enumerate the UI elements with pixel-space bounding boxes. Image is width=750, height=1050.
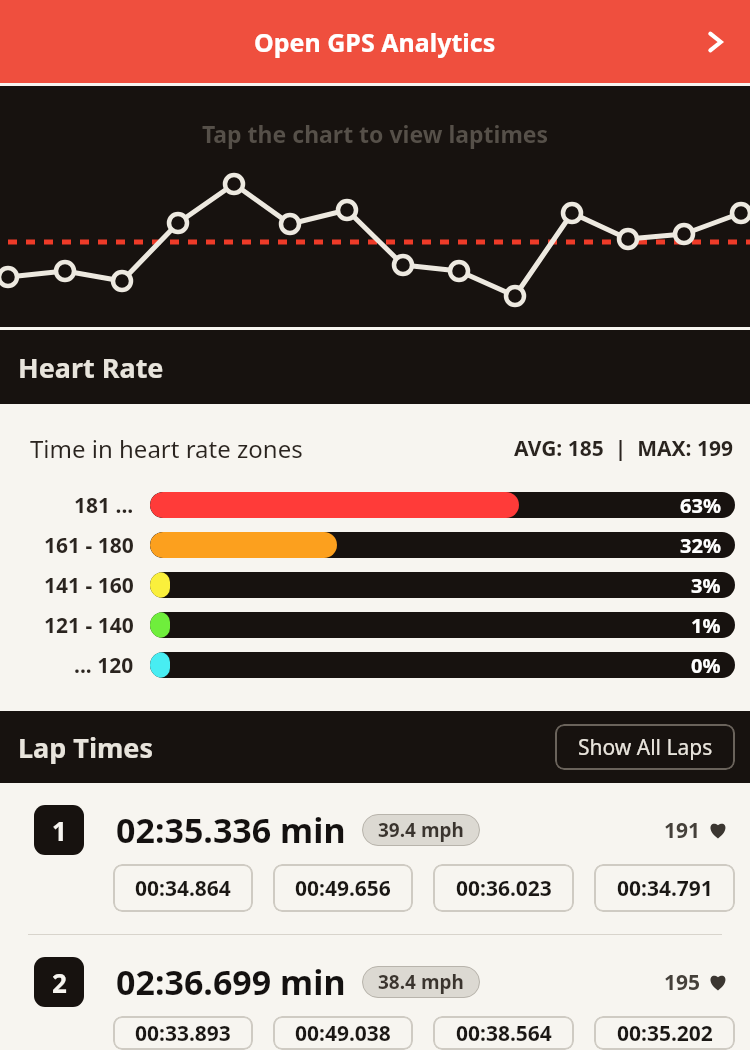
staticText: 00:34.864 bbox=[135, 874, 231, 903]
staticText: 3% bbox=[691, 572, 721, 598]
button[interactable]: 2 bbox=[0, 934, 750, 1050]
staticText: AVG: 185 | MAX: 199 bbox=[514, 434, 733, 463]
button[interactable]: 00:35.202 bbox=[594, 1016, 735, 1050]
staticText: 1% bbox=[691, 612, 721, 638]
button[interactable]: Open GPS Analytics bbox=[0, 0, 750, 83]
staticText: 39.4 mph bbox=[378, 817, 464, 843]
staticText: 00:33.893 bbox=[135, 1019, 231, 1048]
other: Heart rate bbox=[708, 972, 728, 992]
button[interactable]: 00:49.038 bbox=[273, 1016, 413, 1050]
button[interactable]: 00:49.656 bbox=[273, 864, 413, 912]
staticText: 141 - 160 bbox=[44, 571, 134, 600]
button[interactable]: 00:36.023 bbox=[433, 864, 574, 912]
staticText: 00:49.656 bbox=[295, 874, 391, 903]
staticText: 121 - 140 bbox=[44, 611, 134, 640]
staticText: Open GPS Analytics bbox=[254, 25, 496, 59]
staticText: 161 - 180 bbox=[44, 531, 134, 560]
staticText: 02:36.699 min bbox=[116, 959, 346, 1005]
staticText: 181 ... bbox=[74, 491, 134, 520]
button[interactable]: 00:33.893 bbox=[113, 1016, 253, 1050]
staticText: 00:34.791 bbox=[617, 874, 713, 903]
staticText: Time in heart rate zones bbox=[30, 432, 303, 465]
staticText: 00:36.023 bbox=[456, 874, 552, 903]
staticText: 195 bbox=[664, 968, 701, 997]
other: Open bbox=[702, 29, 728, 55]
staticText: 0% bbox=[691, 652, 721, 678]
staticText: 38.4 mph bbox=[378, 969, 464, 995]
button[interactable]: 00:34.791 bbox=[594, 864, 735, 912]
staticText: 02:35.336 min bbox=[116, 807, 346, 853]
staticText: Tap the chart to view laptimes bbox=[0, 118, 750, 149]
button[interactable]: 1 bbox=[0, 783, 750, 934]
staticText: 00:38.564 bbox=[456, 1019, 552, 1048]
staticText: 191 bbox=[664, 816, 701, 845]
button[interactable]: 00:38.564 bbox=[433, 1016, 574, 1050]
staticText: Lap Times bbox=[18, 729, 153, 766]
staticText: 2 bbox=[52, 965, 67, 1000]
button[interactable]: Tap the chart to view laptimes bbox=[0, 86, 750, 327]
staticText: 00:35.202 bbox=[617, 1019, 713, 1048]
staticText: 00:49.038 bbox=[295, 1019, 391, 1048]
button[interactable]: 00:34.864 bbox=[113, 864, 253, 912]
staticText: Heart Rate bbox=[18, 349, 164, 386]
staticText: 1 bbox=[52, 813, 67, 848]
staticText: ... 120 bbox=[74, 651, 134, 680]
staticText: 63% bbox=[680, 492, 721, 518]
button[interactable]: Show All Laps bbox=[555, 724, 735, 770]
staticText: Show All Laps bbox=[578, 733, 713, 762]
other: Heart rate bbox=[708, 820, 728, 840]
staticText: 32% bbox=[680, 532, 721, 558]
